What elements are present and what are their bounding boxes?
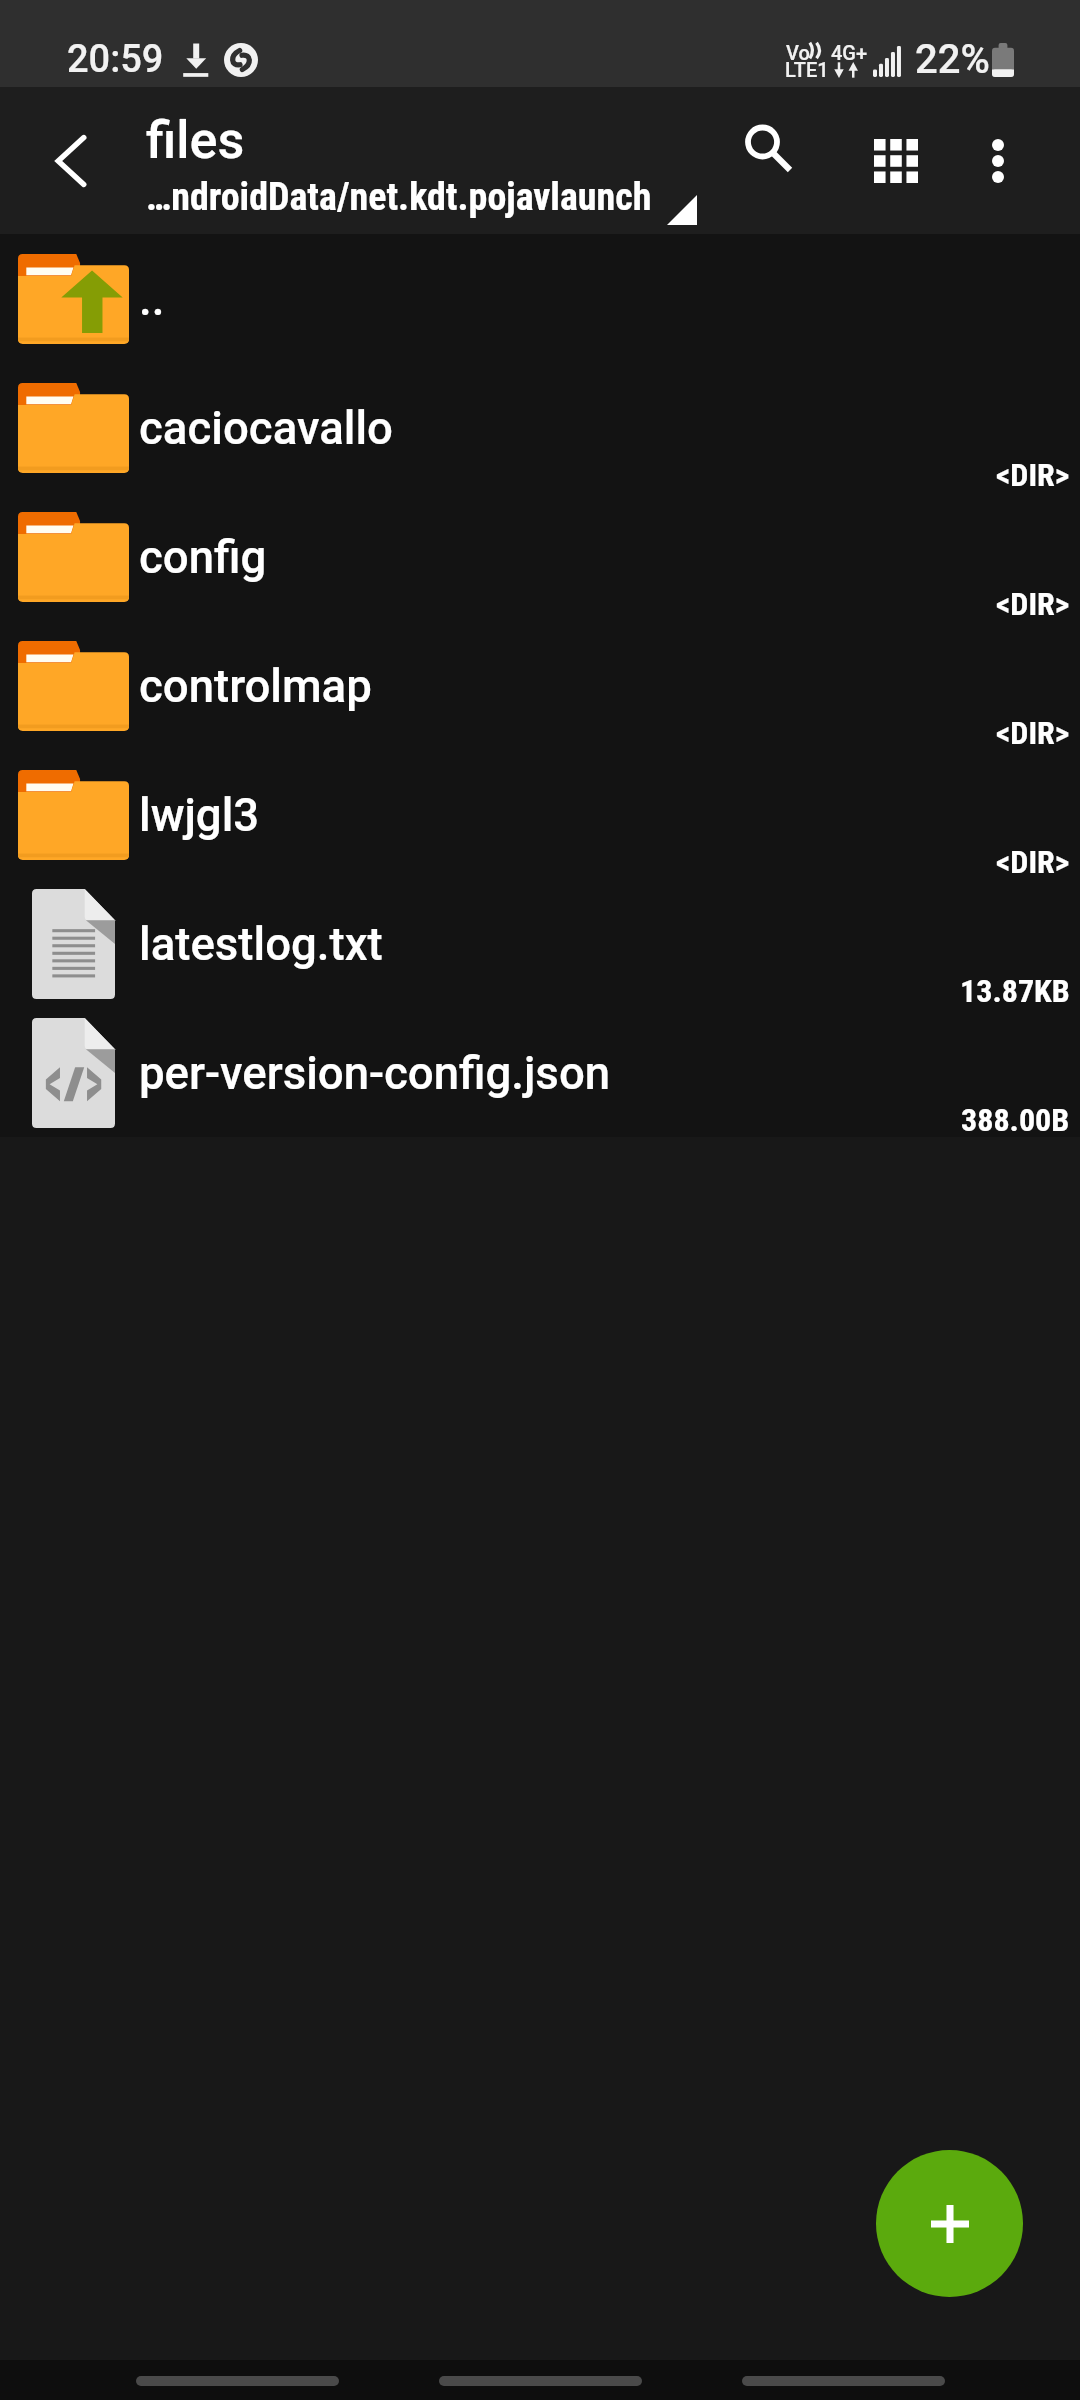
button[interactable]: config — [0, 492, 1080, 621]
staticText: caciocavallo — [139, 402, 394, 455]
staticText: 13.87KB — [960, 972, 1070, 1010]
button[interactable]: Back — [742, 2376, 945, 2386]
button[interactable]: controlmap — [0, 621, 1080, 750]
staticText: LTE1 — [785, 58, 829, 81]
staticText: 4G+ — [831, 41, 868, 64]
staticText: 388.00B — [961, 1101, 1070, 1139]
button[interactable]: Back — [0, 87, 140, 234]
staticText: 22% — [915, 36, 990, 83]
button[interactable]: Recents — [136, 2376, 339, 2386]
button[interactable]: lwjgl3 — [0, 750, 1080, 879]
staticText: <DIR> — [996, 456, 1070, 494]
staticText: <DIR> — [996, 843, 1070, 881]
button[interactable]: More options — [949, 87, 1049, 234]
button[interactable]: files — [140, 87, 720, 234]
staticText: .. — [139, 273, 165, 326]
staticText: <DIR> — [996, 714, 1070, 752]
staticText: <DIR> — [996, 585, 1070, 623]
button[interactable]: Home — [439, 2376, 642, 2386]
staticText: latestlog.txt — [139, 918, 383, 971]
button[interactable]: caciocavallo — [0, 363, 1080, 492]
staticText: Vo — [786, 41, 810, 64]
staticText: lwjgl3 — [139, 789, 260, 842]
staticText: files — [146, 110, 245, 171]
button[interactable]: .. — [0, 234, 1080, 363]
staticText: 20:59 — [67, 37, 164, 82]
button[interactable]: latestlog.txt — [0, 879, 1080, 1008]
button[interactable]: Grid view — [843, 87, 949, 234]
button[interactable]: Add — [876, 2150, 1023, 2297]
staticText: controlmap — [139, 660, 372, 713]
button[interactable]: per-version-config.json — [0, 1008, 1080, 1137]
button[interactable]: Search — [713, 87, 821, 234]
staticText: config — [139, 531, 267, 584]
staticText: …ndroidData/net.kdt.pojavlaunch — [146, 175, 652, 220]
staticText: per-version-config.json — [139, 1047, 611, 1100]
